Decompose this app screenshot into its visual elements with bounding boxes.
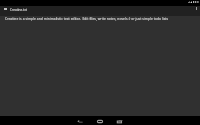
staticText: Creatine is a simple and minimalistic te… (5, 17, 169, 21)
button[interactable]: Recent apps (110, 118, 130, 125)
button[interactable]: Home (90, 118, 110, 125)
button[interactable]: Open navigation drawer (2, 6, 8, 16)
button[interactable]: Creatine.txt (8, 6, 38, 16)
button[interactable]: Back (70, 118, 90, 125)
button[interactable]: Text editor (0, 16, 200, 116)
staticText: Creatine.txt (10, 8, 27, 12)
button[interactable]: More options (193, 6, 200, 16)
